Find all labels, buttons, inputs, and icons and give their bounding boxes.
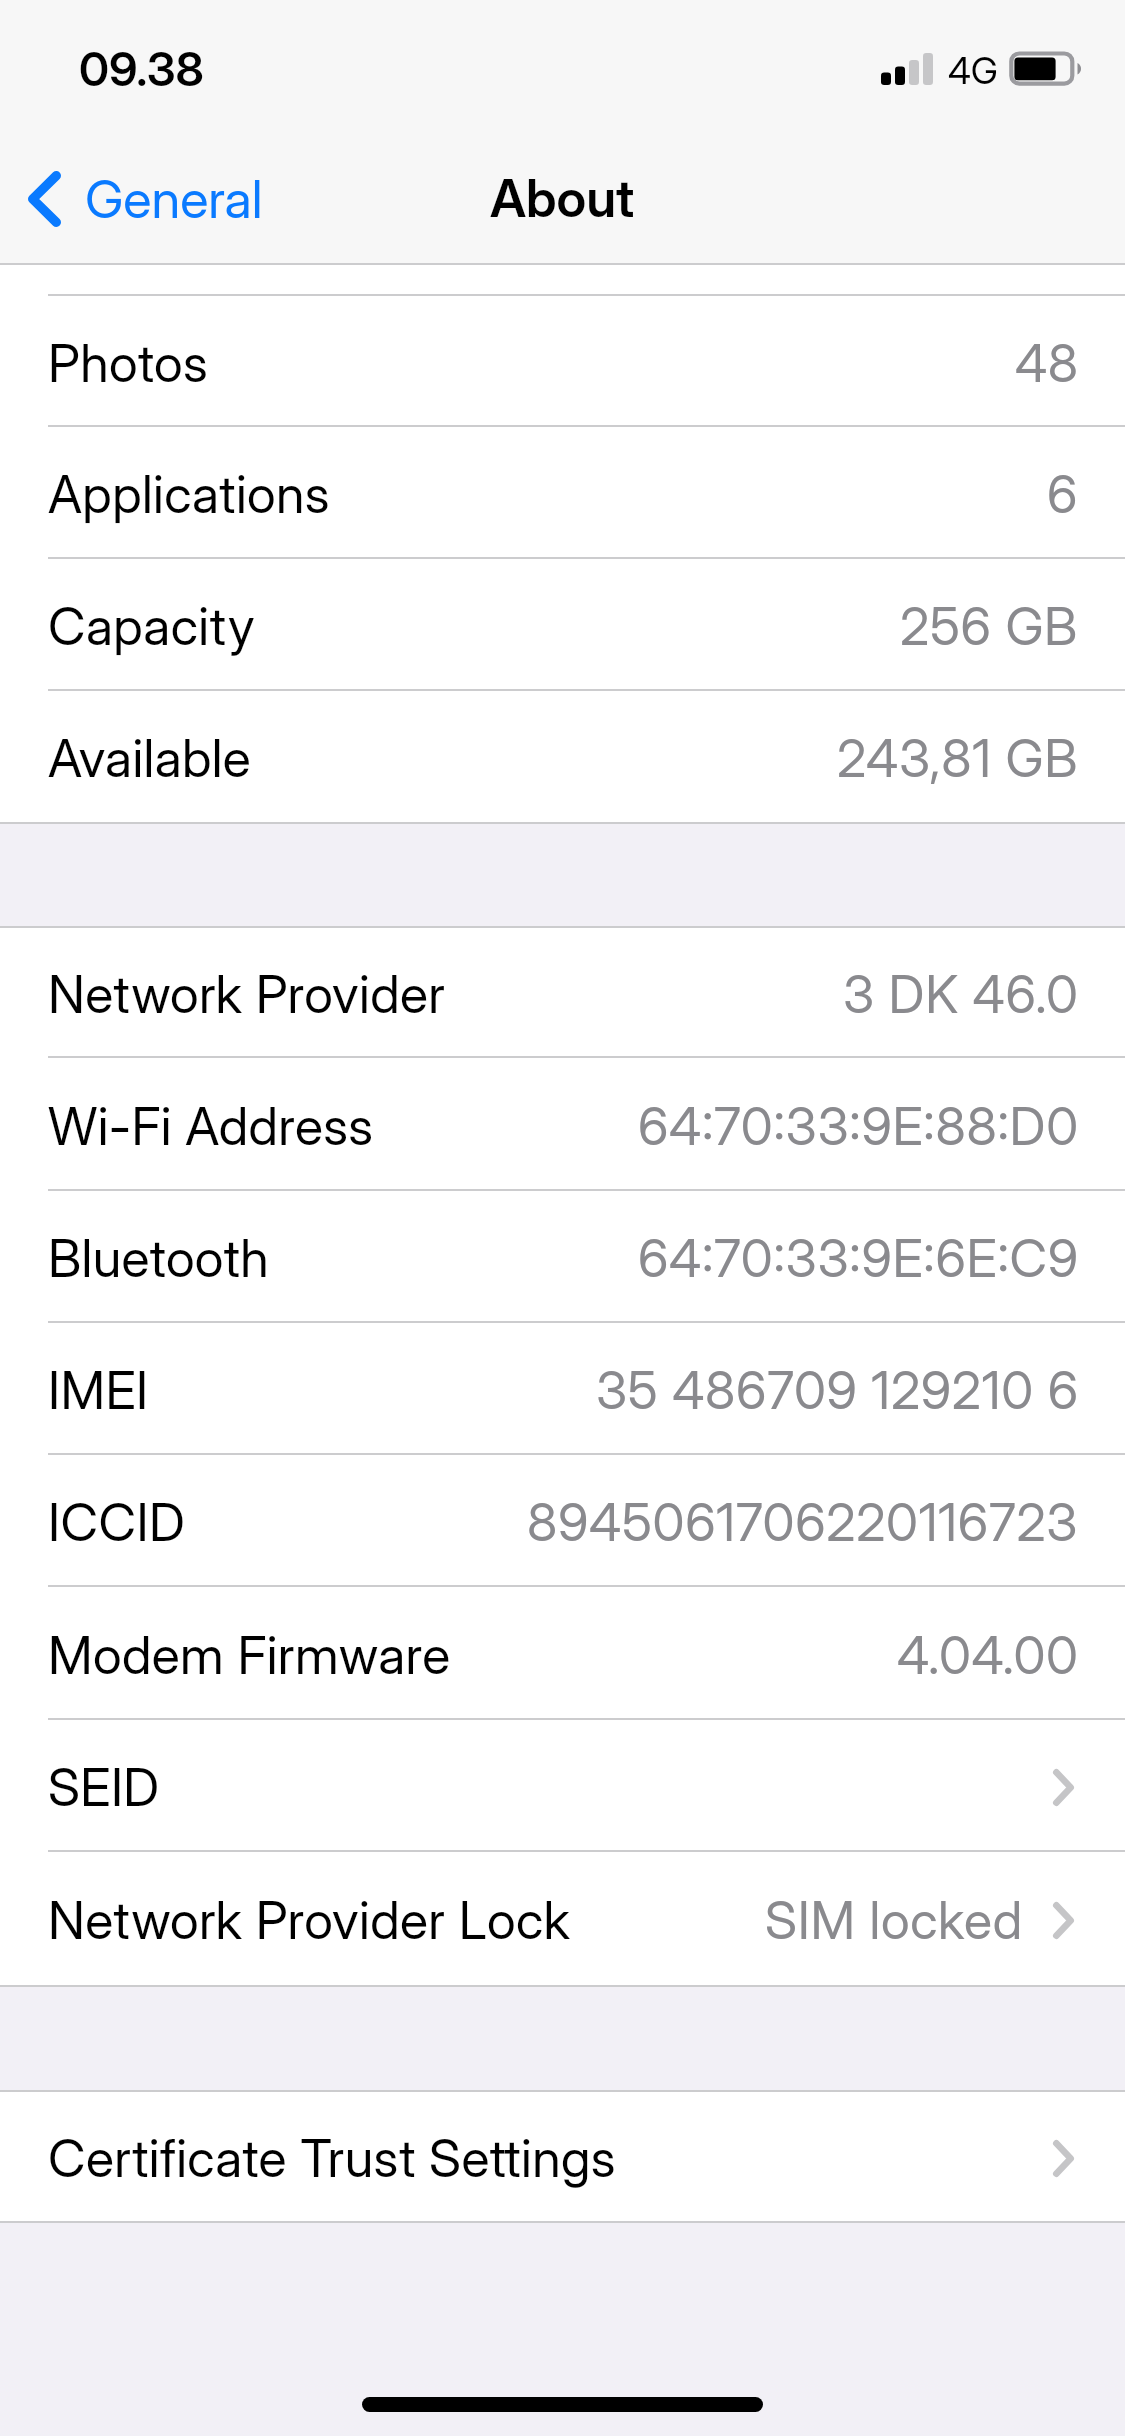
staticText: Available	[48, 727, 252, 790]
button[interactable]: IMEI	[0, 1323, 1125, 1455]
staticText: SIM locked	[765, 1889, 1023, 1952]
staticText: 64:70:33:9E:6E:C9	[638, 1227, 1079, 1290]
staticText: 4G	[948, 48, 998, 93]
other: Open SEID	[1053, 1769, 1074, 1806]
staticText: IMEI	[48, 1359, 149, 1422]
staticText: 3 DK 46.0	[843, 963, 1079, 1026]
staticText: 6	[1047, 463, 1079, 526]
button[interactable]: Applications	[0, 427, 1125, 559]
staticText: Network Provider	[48, 963, 446, 1026]
staticText: Certificate Trust Settings	[48, 2127, 616, 2190]
staticText: Applications	[48, 463, 330, 526]
button[interactable]: Bluetooth	[0, 1191, 1125, 1323]
staticText: SEID	[48, 1756, 160, 1819]
staticText: 48	[1015, 332, 1079, 395]
staticText: Network Provider Lock	[48, 1889, 571, 1952]
staticText: 8945061706220116723	[527, 1491, 1079, 1554]
button[interactable]: Network Provider Lock	[0, 1852, 1125, 1985]
staticText: 4.04.00	[897, 1624, 1079, 1687]
staticText: 35 486709 129210 6	[596, 1359, 1079, 1422]
button[interactable]: Network Provider	[0, 928, 1125, 1058]
staticText: 243,81 GB	[837, 727, 1079, 790]
staticText: Capacity	[48, 595, 255, 658]
button[interactable]: Photos	[0, 296, 1125, 427]
button[interactable]: SEID	[0, 1720, 1125, 1852]
other: Open Certificate Trust Settings	[1053, 2140, 1074, 2177]
staticText: 64:70:33:9E:88:D0	[638, 1095, 1079, 1158]
staticText: Bluetooth	[48, 1227, 270, 1290]
staticText: 256 GB	[900, 595, 1079, 658]
staticText: Photos	[48, 332, 209, 395]
staticText: ICCID	[48, 1491, 186, 1554]
button[interactable]: Modem Firmware	[0, 1587, 1125, 1720]
other: Open Network Provider Lock	[1053, 1902, 1074, 1939]
staticText: Modem Firmware	[48, 1624, 451, 1687]
button[interactable]: Available	[0, 691, 1125, 822]
staticText: 09.38	[79, 40, 204, 97]
staticText: Wi-Fi Address	[48, 1095, 374, 1158]
button[interactable]: Capacity	[0, 559, 1125, 691]
button[interactable]: Wi-Fi Address	[0, 1058, 1125, 1191]
other: Back	[28, 171, 61, 227]
staticText: General	[85, 167, 263, 231]
staticText: About	[490, 167, 635, 230]
button[interactable]: Back	[0, 159, 283, 239]
button[interactable]: ICCID	[0, 1455, 1125, 1587]
button[interactable]: Certificate Trust Settings	[0, 2092, 1125, 2221]
